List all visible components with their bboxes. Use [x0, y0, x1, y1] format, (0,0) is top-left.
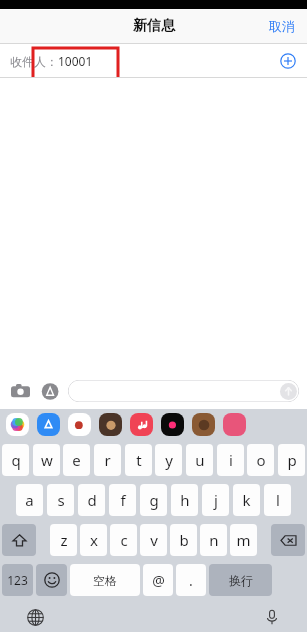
button[interactable]: q: [2, 444, 29, 476]
staticText: j: [214, 490, 218, 510]
button[interactable]: b: [170, 524, 197, 556]
button[interactable]: w: [33, 444, 60, 476]
staticText: r: [104, 450, 111, 470]
button[interactable]: y: [155, 444, 182, 476]
button[interactable]: s: [47, 484, 74, 516]
staticText: c: [120, 530, 128, 550]
staticText: 收件人：: [10, 54, 58, 69]
staticText: m: [236, 530, 251, 550]
button[interactable]: .: [176, 564, 206, 596]
button[interactable]: Send: [68, 380, 299, 402]
staticText: t: [136, 450, 142, 470]
staticText: p: [287, 450, 297, 470]
button[interactable]: z: [50, 524, 77, 556]
button[interactable]: t: [125, 444, 152, 476]
staticText: z: [60, 530, 68, 550]
staticText: o: [256, 450, 266, 470]
staticText: w: [41, 450, 53, 470]
staticText: y: [165, 450, 173, 470]
button[interactable]: App 7: [223, 413, 246, 436]
button[interactable]: App 3: [99, 413, 122, 436]
button[interactable]: c: [110, 524, 137, 556]
button[interactable]: Emoji: [36, 564, 67, 596]
button[interactable]: x: [80, 524, 107, 556]
staticText: u: [195, 450, 205, 470]
button[interactable]: Delete: [271, 524, 305, 556]
staticText: s: [57, 490, 65, 510]
button[interactable]: App 4: [130, 413, 153, 436]
button[interactable]: Dictate: [261, 606, 283, 628]
staticText: l: [276, 490, 280, 510]
staticText: h: [180, 490, 190, 510]
staticText: a: [25, 490, 34, 510]
staticText: g: [149, 490, 159, 510]
staticText: d: [87, 490, 97, 510]
button[interactable]: r: [94, 444, 121, 476]
button[interactable]: v: [140, 524, 167, 556]
staticText: 新信息: [133, 17, 175, 35]
button[interactable]: App 6: [192, 413, 215, 436]
button[interactable]: l: [264, 484, 291, 516]
button[interactable]: j: [202, 484, 229, 516]
button[interactable]: 收件人：: [0, 44, 307, 77]
button[interactable]: i: [217, 444, 244, 476]
staticText: 取消: [269, 18, 295, 34]
button[interactable]: k: [233, 484, 260, 516]
button[interactable]: h: [171, 484, 198, 516]
button[interactable]: Change keyboard: [24, 606, 46, 628]
button[interactable]: 换行: [209, 564, 272, 596]
button[interactable]: 取消: [265, 14, 299, 38]
button[interactable]: m: [230, 524, 257, 556]
button[interactable]: d: [78, 484, 105, 516]
button[interactable]: f: [109, 484, 136, 516]
button[interactable]: Send: [280, 383, 297, 400]
button[interactable]: u: [186, 444, 213, 476]
staticText: x: [90, 530, 98, 550]
staticText: @: [152, 571, 165, 590]
staticText: 123: [7, 572, 28, 588]
staticText: .: [189, 571, 193, 590]
staticText: n: [209, 530, 219, 550]
button[interactable]: n: [200, 524, 227, 556]
staticText: v: [150, 530, 158, 550]
staticText: f: [120, 490, 126, 510]
staticText: 10001: [58, 53, 93, 69]
button[interactable]: App 1: [37, 413, 60, 436]
button[interactable]: App 0: [6, 413, 29, 436]
staticText: b: [179, 530, 189, 550]
staticText: k: [242, 490, 251, 510]
button[interactable]: @: [143, 564, 173, 596]
staticText: e: [72, 450, 81, 470]
staticText: q: [11, 450, 21, 470]
button[interactable]: Camera: [8, 379, 32, 403]
button[interactable]: App 2: [68, 413, 91, 436]
button[interactable]: e: [63, 444, 90, 476]
button[interactable]: a: [16, 484, 43, 516]
button[interactable]: o: [247, 444, 274, 476]
button[interactable]: p: [278, 444, 305, 476]
button[interactable]: Add contact: [277, 50, 299, 72]
staticText: 空格: [93, 573, 117, 588]
staticText: i: [229, 450, 233, 470]
button[interactable]: App 5: [161, 413, 184, 436]
button[interactable]: g: [140, 484, 167, 516]
button[interactable]: App Store: [38, 379, 62, 403]
button[interactable]: 123: [2, 564, 33, 596]
button[interactable]: Shift: [2, 524, 36, 556]
staticText: 换行: [229, 573, 253, 588]
button[interactable]: 空格: [70, 564, 140, 596]
